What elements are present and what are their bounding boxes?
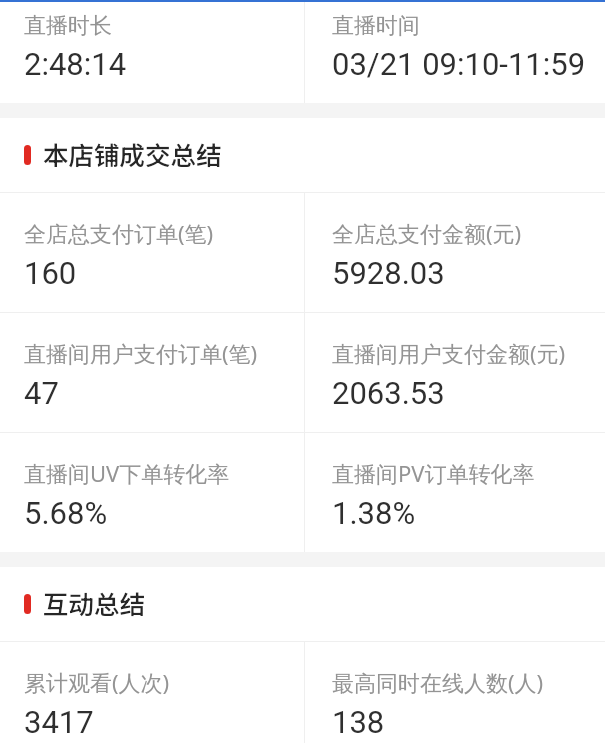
staticText: 直播间用户支付订单(笔) bbox=[24, 338, 258, 368]
staticText: 本店铺成交总结 bbox=[43, 135, 222, 172]
staticText: 最高同时在线人数(人) bbox=[332, 667, 544, 697]
button[interactable]: 累计观看(人次) bbox=[0, 642, 304, 743]
button[interactable]: 直播间用户支付金额(元) bbox=[305, 313, 605, 432]
staticText: 互动总结 bbox=[43, 584, 146, 621]
staticText: 累计观看(人次) bbox=[24, 667, 170, 697]
staticText: 138 bbox=[332, 704, 385, 740]
staticText: 5.68% bbox=[24, 495, 108, 531]
button[interactable]: 直播间PV订单转化率 bbox=[305, 433, 605, 552]
staticText: 1.38% bbox=[332, 495, 416, 531]
button[interactable]: 全店总支付订单(笔) bbox=[0, 193, 304, 312]
staticText: 直播间用户支付金额(元) bbox=[332, 338, 566, 368]
staticText: 全店总支付订单(笔) bbox=[24, 218, 214, 248]
staticText: 03/21 09:10-11:59 bbox=[332, 46, 586, 82]
button[interactable]: 互动总结 bbox=[0, 567, 605, 641]
button[interactable]: 直播间UV下单转化率 bbox=[0, 433, 304, 552]
staticText: 直播时间 bbox=[332, 12, 420, 40]
staticText: 47 bbox=[24, 375, 59, 411]
button[interactable]: 直播时间 bbox=[305, 2, 605, 103]
button[interactable]: 直播间用户支付订单(笔) bbox=[0, 313, 304, 432]
staticText: 5928.03 bbox=[332, 255, 445, 291]
staticText: 2063.53 bbox=[332, 375, 445, 411]
staticText: 3417 bbox=[24, 704, 94, 740]
button[interactable]: 全店总支付金额(元) bbox=[305, 193, 605, 312]
staticText: 直播时长 bbox=[24, 12, 112, 40]
staticText: 直播间UV下单转化率 bbox=[24, 458, 230, 488]
button[interactable]: 直播时长 bbox=[0, 2, 304, 103]
staticText: 全店总支付金额(元) bbox=[332, 218, 522, 248]
staticText: 直播间PV订单转化率 bbox=[332, 458, 535, 488]
button[interactable]: 本店铺成交总结 bbox=[0, 118, 605, 192]
staticText: 2:48:14 bbox=[24, 46, 127, 82]
staticText: 160 bbox=[24, 255, 77, 291]
button[interactable]: 最高同时在线人数(人) bbox=[305, 642, 605, 743]
